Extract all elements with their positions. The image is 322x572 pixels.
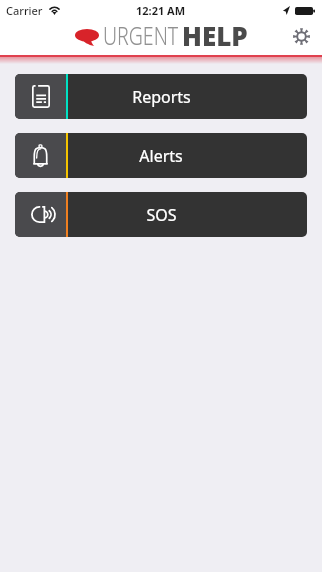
staticText: Carrier bbox=[6, 3, 43, 18]
staticText: 12:21 AM bbox=[136, 3, 186, 18]
staticText: HELP bbox=[182, 18, 248, 50]
staticText: URGENT bbox=[103, 18, 179, 50]
button[interactable]: Alerts bbox=[15, 133, 307, 178]
button[interactable]: Reports bbox=[15, 74, 307, 119]
staticText: Alerts bbox=[139, 145, 183, 167]
button[interactable]: Settings bbox=[287, 22, 315, 50]
staticText: SOS bbox=[146, 204, 177, 226]
staticText: Reports bbox=[132, 86, 191, 108]
button[interactable]: SOS bbox=[15, 192, 307, 237]
